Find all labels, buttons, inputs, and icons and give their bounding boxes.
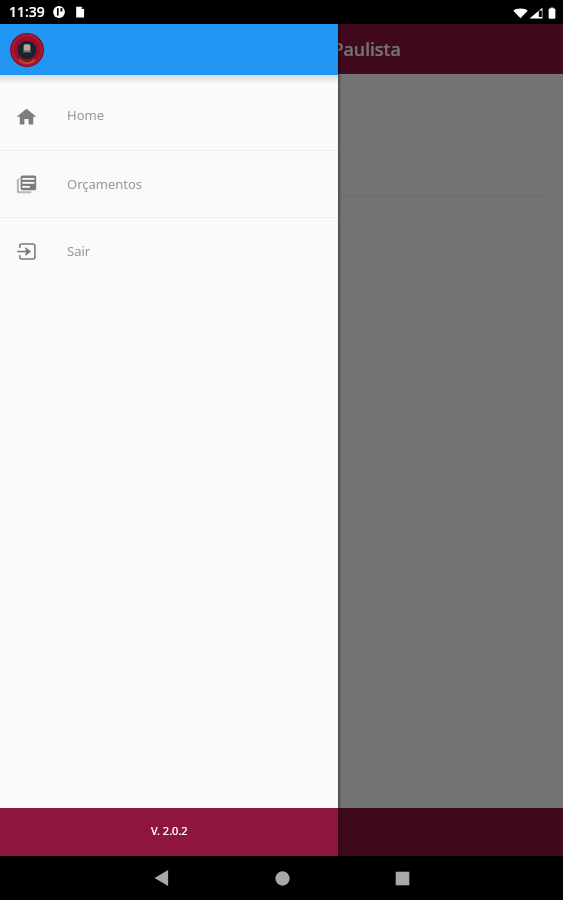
button[interactable]: Home xyxy=(262,858,302,898)
button[interactable]: Sair xyxy=(0,218,338,284)
button[interactable]: Paulista account header xyxy=(0,24,338,75)
button[interactable]: Open navigation drawer xyxy=(14,32,48,66)
staticText: 11:39 xyxy=(9,2,45,21)
staticText: Sair xyxy=(67,242,91,260)
staticText: Home xyxy=(67,106,104,124)
staticText: Orçamentos xyxy=(67,175,143,193)
staticText: V. 2.0.2 xyxy=(151,823,188,838)
button[interactable]: V. 2.0.2 xyxy=(0,808,338,856)
button[interactable]: Recents xyxy=(382,858,422,898)
button[interactable]: Close navigation drawer xyxy=(0,0,563,900)
staticText: Marmoraria e Granitos Paulista xyxy=(132,37,401,62)
button[interactable]: Back xyxy=(142,858,182,898)
button[interactable]: Orçamentos xyxy=(0,151,338,217)
button[interactable]: Home xyxy=(0,79,338,150)
